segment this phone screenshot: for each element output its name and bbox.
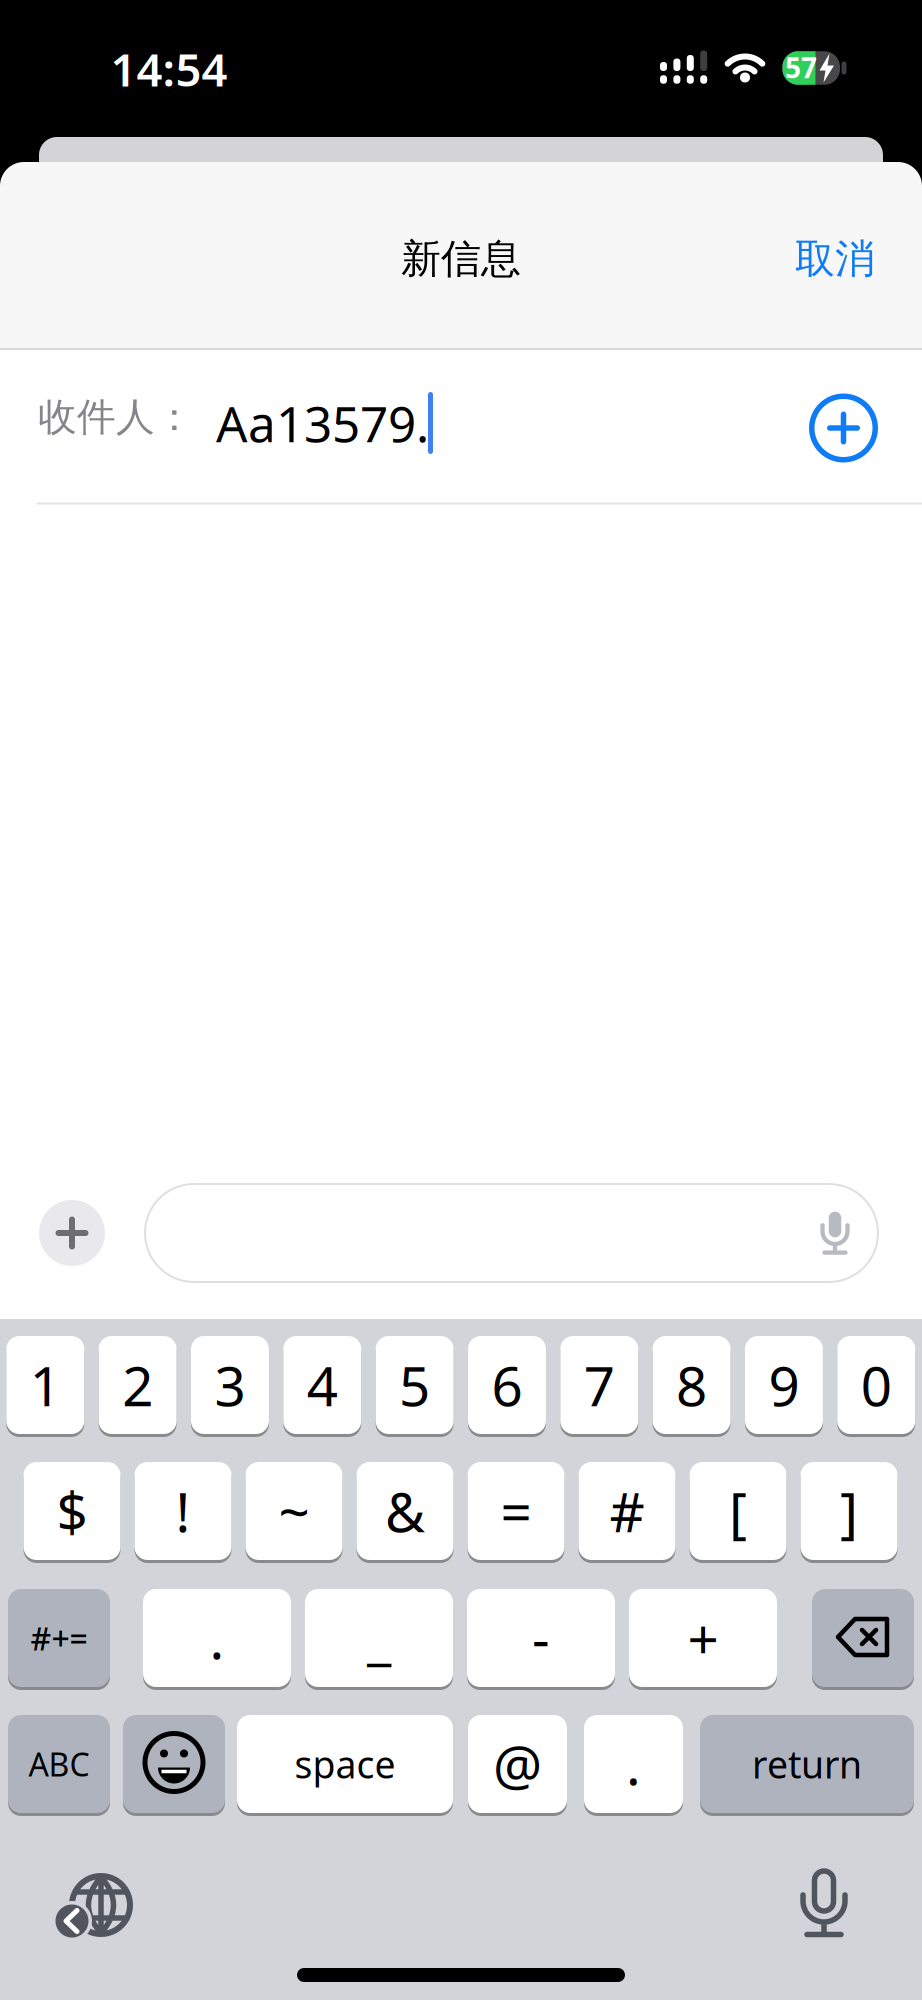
staticText: 1 [30, 1349, 61, 1421]
button[interactable]: _ [305, 1587, 453, 1689]
staticText: 5 [399, 1349, 430, 1421]
staticText: ABC [28, 1743, 89, 1785]
staticText: & [385, 1475, 425, 1547]
staticText: $ [56, 1475, 87, 1547]
staticText: @ [493, 1728, 542, 1800]
button[interactable]: 0 [837, 1334, 915, 1436]
button[interactable]: . [584, 1713, 683, 1815]
staticText: + [687, 1602, 718, 1674]
button[interactable]: 3 [191, 1334, 269, 1436]
button[interactable]: 删除 [812, 1586, 914, 1690]
button[interactable]: space [237, 1713, 453, 1815]
button[interactable]: [ [689, 1460, 786, 1562]
staticText: 3 [214, 1349, 245, 1421]
button[interactable]: & [356, 1460, 453, 1562]
button[interactable]: = [467, 1460, 564, 1562]
staticText: ! [175, 1475, 190, 1547]
button[interactable]: 表情符号 [123, 1712, 225, 1815]
button[interactable]: 更多操作 [39, 1200, 105, 1266]
staticText: 7 [584, 1349, 615, 1421]
button[interactable]: 取消 [775, 224, 895, 294]
staticText: ~ [278, 1475, 309, 1547]
button[interactable]: ] [800, 1460, 897, 1562]
staticText: 6 [491, 1349, 522, 1421]
staticText: 14:54 [110, 39, 227, 99]
staticText: space [294, 1739, 395, 1789]
staticText: . [209, 1602, 224, 1674]
button[interactable]: 2 [99, 1334, 177, 1436]
staticText: # [609, 1475, 644, 1547]
staticText: return [752, 1739, 862, 1789]
staticText: 0 [861, 1349, 892, 1421]
staticText: 新信息 [401, 234, 521, 283]
staticText: = [500, 1475, 531, 1547]
staticText: [ [729, 1475, 747, 1547]
staticText: 取消 [795, 234, 875, 283]
button[interactable]: 9 [745, 1334, 823, 1436]
staticText: _ [367, 1602, 391, 1674]
staticText: ] [840, 1475, 858, 1547]
button[interactable]: - [467, 1587, 615, 1689]
button[interactable]: 1 [6, 1334, 84, 1436]
button[interactable]: + [629, 1587, 777, 1689]
button[interactable]: 5 [376, 1334, 454, 1436]
button[interactable]: return [700, 1713, 914, 1815]
button[interactable]: #+= [8, 1587, 110, 1689]
staticText: 2 [122, 1349, 153, 1421]
button[interactable]: 4 [283, 1334, 361, 1436]
button[interactable]: 8 [653, 1334, 731, 1436]
button[interactable]: 听写 [797, 1194, 873, 1270]
staticText: - [532, 1602, 550, 1674]
button[interactable]: @ [468, 1713, 567, 1815]
staticText: 9 [768, 1349, 799, 1421]
button[interactable]: $ [23, 1460, 120, 1562]
staticText: #+= [30, 1617, 87, 1659]
staticText: . [626, 1728, 641, 1800]
button[interactable]: 7 [560, 1334, 638, 1436]
button[interactable]: 6 [468, 1334, 546, 1436]
button[interactable]: ! [134, 1460, 231, 1562]
button[interactable]: . [143, 1587, 291, 1689]
button[interactable]: 语音输入 [778, 1848, 868, 1958]
staticText: 收件人： [38, 393, 194, 441]
button[interactable]: ABC [8, 1713, 110, 1815]
staticText: 4 [307, 1349, 338, 1421]
button[interactable]: 添加联系人 [805, 390, 881, 466]
staticText: 57 [785, 49, 817, 86]
button[interactable]: ~ [245, 1460, 342, 1562]
button[interactable]: 下一个输入法 [45, 1850, 155, 1960]
staticText: 8 [676, 1349, 707, 1421]
button[interactable]: # [578, 1460, 675, 1562]
staticText: Aa13579. [216, 390, 429, 456]
